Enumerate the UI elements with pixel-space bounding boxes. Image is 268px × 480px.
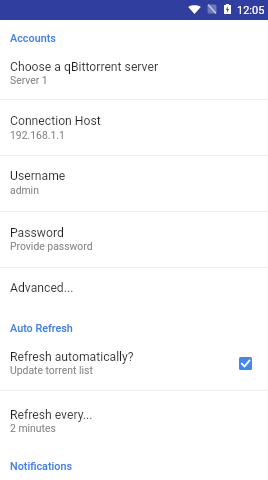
button[interactable]: Choose a qBittorrent server <box>0 45 268 99</box>
button[interactable]: Refresh automatically <box>234 352 256 374</box>
staticText: Password <box>10 226 64 240</box>
button[interactable]: Connection Host <box>0 100 268 155</box>
staticText: Advanced... <box>10 281 74 295</box>
staticText: Username <box>10 169 66 183</box>
staticText: Accounts <box>10 32 56 45</box>
staticText: Provide password <box>10 240 93 252</box>
button[interactable]: Username <box>0 156 268 211</box>
button[interactable]: Refresh every... <box>0 391 268 446</box>
staticText: admin <box>10 184 39 196</box>
button[interactable]: Password <box>0 212 268 267</box>
button[interactable]: Refresh automatically? <box>0 336 268 390</box>
staticText: Notifications <box>10 460 73 473</box>
staticText: Auto Refresh <box>10 322 73 335</box>
staticText: Server 1 <box>10 74 48 86</box>
staticText: Connection Host <box>10 114 101 128</box>
staticText: Refresh every... <box>10 408 93 422</box>
staticText: 192.168.1.1 <box>10 129 65 141</box>
staticText: Update torrent list <box>10 364 93 376</box>
staticText: Refresh automatically? <box>10 350 134 364</box>
button[interactable]: Advanced... <box>0 268 268 310</box>
staticText: 12:05 <box>237 4 265 17</box>
staticText: Choose a qBittorrent server <box>10 60 159 74</box>
staticText: 2 minutes <box>10 422 56 434</box>
